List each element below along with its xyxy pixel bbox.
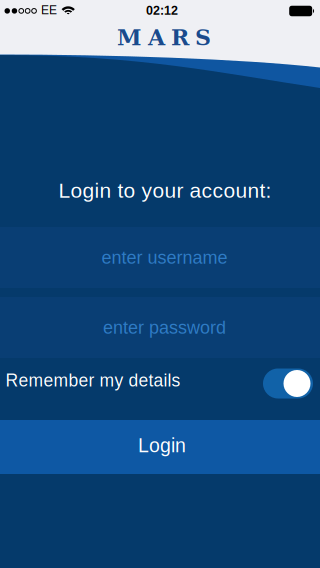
staticText: enter username xyxy=(101,247,227,267)
button[interactable]: Login xyxy=(0,420,320,474)
staticText: EE xyxy=(41,3,57,17)
staticText: A xyxy=(148,24,165,50)
staticText: Login xyxy=(138,435,186,456)
staticText: Remember my details xyxy=(5,371,180,390)
staticText: 02:12 xyxy=(146,3,178,17)
staticText: M xyxy=(117,24,142,50)
staticText: Login to your account: xyxy=(58,179,271,202)
button[interactable]: enter username xyxy=(0,227,320,288)
staticText: enter password xyxy=(103,317,226,337)
button[interactable]: Remember my details xyxy=(263,368,313,398)
staticText: R xyxy=(171,24,189,50)
button[interactable]: enter password xyxy=(0,297,320,358)
staticText: S xyxy=(195,24,211,50)
